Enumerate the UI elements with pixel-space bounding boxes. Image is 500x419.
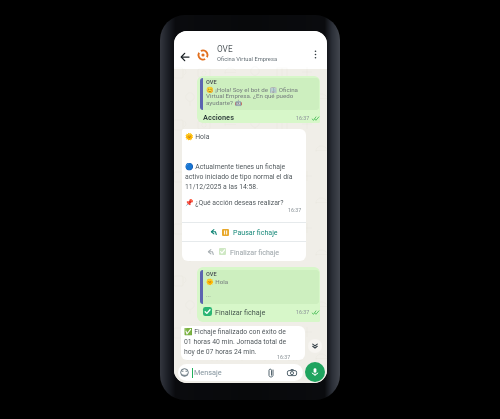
button[interactable]: Voice message	[305, 362, 325, 382]
staticText: 16:37	[277, 354, 291, 360]
button[interactable]: Pausar fichaje	[182, 223, 306, 241]
staticText: 16:37	[288, 207, 302, 213]
staticText: OVE	[217, 44, 233, 54]
staticText: ✅ Fichaje finalizado con éxito de 01 hor…	[184, 328, 291, 355]
staticText: Oficina Virtual Empresa	[217, 56, 278, 63]
staticText: 🌞 Hola	[185, 133, 210, 141]
staticText: Acciones	[203, 113, 234, 122]
staticText: 🌞 Hola	[206, 278, 229, 285]
button[interactable]: Finalizar fichaje	[182, 242, 306, 261]
staticText: OVE	[206, 271, 217, 278]
button[interactable]: Scroll to bottom	[308, 339, 322, 353]
staticText: 16:37	[296, 115, 310, 121]
staticText: OVE	[206, 79, 217, 86]
other: Emoji	[180, 368, 189, 377]
staticText: 📌 ¿Qué acción deseas realizar?	[185, 199, 284, 207]
staticText: Finalizar fichaje	[215, 308, 266, 316]
staticText: Pausar fichaje	[233, 228, 278, 236]
staticText: ...	[206, 291, 211, 298]
staticText: 16:37	[296, 309, 310, 315]
staticText: 🔵 Actualmente tienes un fichaje activo i…	[185, 163, 298, 190]
button[interactable]: Back	[177, 49, 192, 64]
other: Camera	[287, 368, 297, 378]
button[interactable]: More options	[309, 48, 322, 61]
other: Attach	[266, 368, 276, 378]
button[interactable]: Emoji	[178, 364, 303, 381]
staticText: Mensaje	[194, 368, 222, 377]
staticText: 😊 ¡Hola! Soy el bot de 🏢 Oficina Virtual…	[206, 86, 317, 107]
staticText: Finalizar fichaje	[230, 248, 280, 256]
